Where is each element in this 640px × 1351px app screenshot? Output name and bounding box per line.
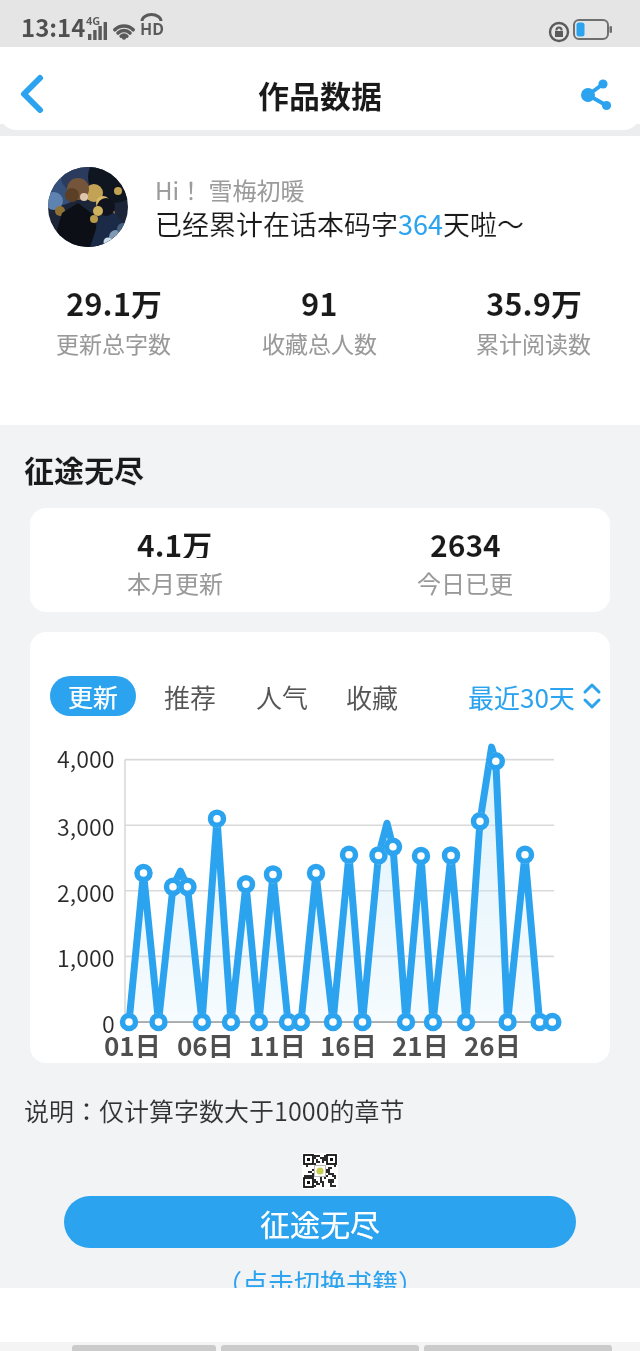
button[interactable]: 推荐 [155,678,225,714]
staticText: 本月更新 [127,565,223,597]
staticText: 今日已更 [417,565,513,597]
staticText: 4,000 [57,741,115,773]
button[interactable]: 29.1万 [7,280,220,360]
staticText: 2,000 [57,875,115,907]
staticText: 已经累计在话本码字364天啦～ [155,204,524,243]
staticText: 2634 [430,522,501,558]
button[interactable]: 91 [213,280,426,360]
staticText: 作品数据 [258,72,382,116]
staticText: 13:14 [21,9,86,39]
button[interactable]: 更新 [50,676,136,716]
staticText: 01日 [104,1026,161,1058]
staticText: 征途无尽 [24,447,144,490]
staticText: 说明：仅计算字数大于1000的章节 [24,1092,405,1128]
staticText: 91 [301,280,338,320]
staticText: 29.1万 [66,280,162,320]
staticText: 11日 [249,1026,306,1058]
staticText: 累计阅读数 [476,326,591,356]
staticText: 最近30天 [468,678,575,714]
staticText: 人气 [256,678,309,714]
button[interactable] [48,167,128,247]
staticText: 收藏总人数 [262,326,377,356]
staticText: 26日 [464,1026,521,1058]
button[interactable]: 最近30天 [468,678,601,714]
staticText: HD [140,18,164,40]
staticText: 16日 [320,1026,377,1058]
staticText: 收藏 [346,678,399,714]
staticText: 4G [86,13,101,28]
staticText: 21日 [392,1026,449,1058]
staticText: 更新 [68,678,119,714]
staticText: Hi！ 雪梅初暖 [155,172,305,207]
staticText: 推荐 [164,678,217,714]
button[interactable]: 35.9万 [427,280,640,360]
button[interactable] [10,70,58,118]
staticText: 35.9万 [486,280,582,320]
button[interactable]: 收藏 [337,678,407,714]
staticText: 征途无尽 [260,1201,380,1244]
button[interactable] [568,72,614,118]
staticText: 更新总字数 [56,326,171,356]
staticText: 3,000 [57,809,115,841]
staticText: 06日 [177,1026,234,1058]
staticText: （点击切换书籍） [216,1263,425,1301]
staticText: 0 [102,1006,115,1038]
staticText: 4.1万 [137,522,213,558]
button[interactable]: （点击切换书籍） [0,1262,640,1302]
staticText: 1,000 [57,940,115,972]
button[interactable]: 人气 [247,678,317,714]
button[interactable]: 征途无尽 [64,1196,576,1248]
